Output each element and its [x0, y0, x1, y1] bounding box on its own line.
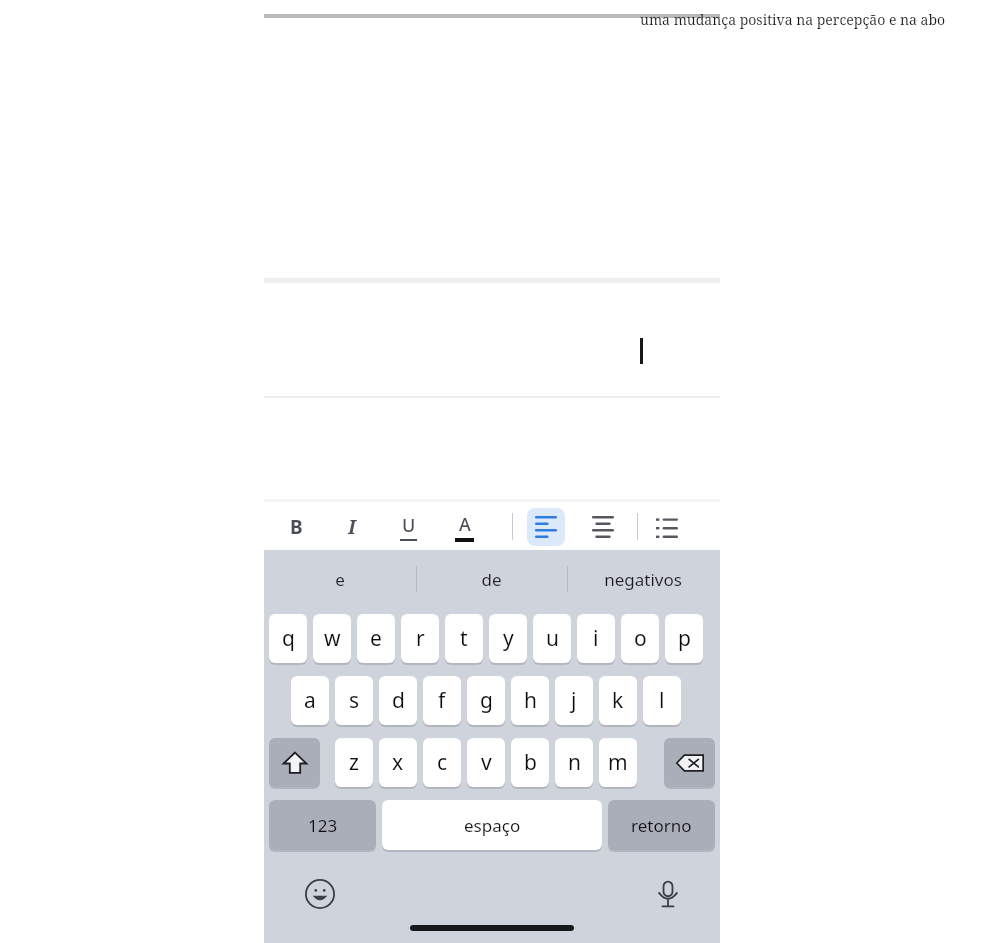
button[interactable]: q	[269, 614, 307, 663]
staticText: n	[568, 748, 581, 777]
button[interactable]: m	[599, 738, 637, 787]
staticText: z	[349, 748, 359, 777]
staticText: j	[571, 686, 577, 715]
button[interactable]: 123	[269, 800, 376, 850]
staticText: o	[634, 624, 647, 653]
staticText: u	[546, 624, 559, 653]
button[interactable]: u	[533, 614, 571, 663]
button[interactable]: n	[555, 738, 593, 787]
button[interactable]: Shift	[269, 738, 320, 787]
button[interactable]: c	[423, 738, 461, 787]
staticText: espaço	[464, 814, 521, 837]
button[interactable]: Underline	[389, 508, 427, 546]
button[interactable]: w	[313, 614, 351, 663]
button[interactable]: z	[335, 738, 373, 787]
button[interactable]: Text color	[445, 508, 483, 546]
button[interactable]: Italic	[333, 508, 371, 546]
button[interactable]: a	[291, 676, 329, 725]
button[interactable]: s	[335, 676, 373, 725]
staticText: I	[348, 514, 356, 540]
button[interactable]: r	[401, 614, 439, 663]
button[interactable]: Bulleted list	[648, 508, 686, 546]
staticText: m	[608, 748, 628, 777]
button[interactable]: j	[555, 676, 593, 725]
button[interactable]: e	[270, 550, 410, 608]
staticText: c	[437, 748, 448, 777]
button[interactable]: h	[511, 676, 549, 725]
staticText: q	[282, 624, 295, 653]
staticText: s	[349, 686, 360, 715]
staticText: g	[480, 686, 493, 715]
staticText: t	[460, 624, 468, 653]
button[interactable]: d	[379, 676, 417, 725]
button[interactable]: k	[599, 676, 637, 725]
staticText: e	[335, 568, 345, 591]
staticText: U	[402, 513, 416, 538]
staticText: y	[503, 624, 514, 653]
button[interactable]: v	[467, 738, 505, 787]
button[interactable]: Emoji	[298, 872, 342, 916]
staticText: v	[481, 748, 492, 777]
staticText: A	[459, 512, 471, 537]
button[interactable]: t	[445, 614, 483, 663]
staticText: e	[370, 624, 382, 653]
staticText: i	[593, 624, 599, 653]
button[interactable]: i	[577, 614, 615, 663]
button[interactable]: o	[621, 614, 659, 663]
button[interactable]: y	[489, 614, 527, 663]
staticText: w	[324, 624, 341, 653]
staticText: a	[304, 686, 316, 715]
staticText: h	[524, 686, 537, 715]
staticText: l	[659, 686, 665, 715]
button[interactable]: l	[643, 676, 681, 725]
staticText: p	[678, 624, 691, 653]
staticText: f	[438, 686, 446, 715]
button[interactable]: Align center	[584, 508, 622, 546]
staticText: 123	[308, 814, 338, 837]
staticText: uma mudança positiva na percepção e na a…	[640, 10, 946, 29]
staticText: b	[524, 748, 537, 777]
staticText: negativos	[604, 568, 682, 591]
button[interactable]: b	[511, 738, 549, 787]
button[interactable]: Dictation	[646, 872, 690, 916]
button[interactable]: Bold	[277, 508, 315, 546]
button[interactable]: espaço	[382, 800, 602, 850]
button[interactable]: retorno	[608, 800, 715, 850]
button[interactable]: Backspace	[664, 738, 715, 787]
button[interactable]: de	[421, 550, 561, 608]
button[interactable]: negativos	[573, 550, 713, 608]
button[interactable]: g	[467, 676, 505, 725]
staticText: x	[392, 748, 404, 777]
button[interactable]: e	[357, 614, 395, 663]
staticText: B	[290, 514, 303, 540]
staticText: r	[416, 624, 425, 653]
button[interactable]: p	[665, 614, 703, 663]
staticText: de	[481, 568, 502, 591]
button[interactable]: Align left	[527, 508, 565, 546]
button[interactable]: f	[423, 676, 461, 725]
staticText: k	[612, 686, 624, 715]
staticText: d	[392, 686, 405, 715]
staticText: retorno	[631, 814, 692, 837]
button[interactable]: x	[379, 738, 417, 787]
